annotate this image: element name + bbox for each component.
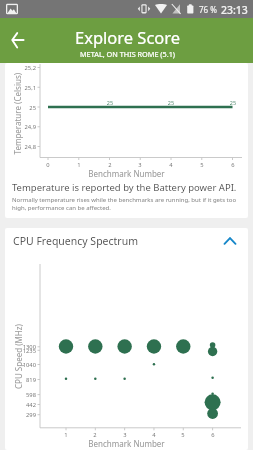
staticText: 5	[196, 161, 208, 169]
staticText: 1	[60, 431, 72, 439]
button[interactable]: CPU Frequency Spectrum	[5, 228, 248, 254]
staticText: 3	[119, 431, 131, 439]
staticText: CPU Frequency Spectrum	[13, 234, 138, 248]
staticText: 2	[89, 431, 101, 439]
staticText: 25	[102, 99, 118, 106]
staticText: 23:13	[221, 3, 248, 17]
staticText: 598	[5, 391, 36, 399]
staticText: 25	[163, 99, 179, 106]
staticText: Benchmark Number	[5, 168, 248, 179]
staticText: Temperature is reported by the Battery p…	[12, 181, 237, 194]
staticText: 1300	[5, 343, 36, 351]
staticText: 299	[5, 411, 36, 419]
staticText: 2	[104, 161, 116, 169]
staticText: Benchmark Number	[5, 438, 248, 449]
staticText: 24,9	[5, 123, 36, 131]
staticText: 3	[134, 161, 146, 169]
staticText: METAL, ON THIS ROME (5.1)	[80, 49, 176, 59]
staticText: 25	[5, 104, 36, 112]
staticText: 442	[5, 401, 36, 409]
staticText: 25,2	[5, 64, 36, 72]
staticText: 76 %	[199, 4, 217, 15]
staticText: Temperature (Celsius)	[11, 72, 22, 154]
staticText: Normally temperature rises while the ben…	[12, 196, 248, 212]
button[interactable]: Back	[4, 21, 32, 49]
staticText: 25	[225, 99, 241, 106]
staticText: 5	[177, 431, 189, 439]
staticText: CPU Speed (MHz)	[13, 324, 24, 389]
staticText: 24,8	[5, 143, 36, 151]
staticText: 4	[148, 431, 160, 439]
staticText: 6	[207, 431, 219, 439]
staticText: 1235	[5, 347, 36, 355]
staticText: 6	[227, 161, 239, 169]
staticText: Explore Score	[75, 26, 181, 48]
staticText: 4	[165, 161, 177, 169]
staticText: 1	[73, 161, 85, 169]
staticText: 0	[42, 161, 54, 169]
staticText: 1040	[5, 361, 36, 369]
staticText: 25,1	[5, 84, 36, 92]
button[interactable]: Collapse	[217, 228, 243, 254]
staticText: 819	[5, 376, 36, 384]
